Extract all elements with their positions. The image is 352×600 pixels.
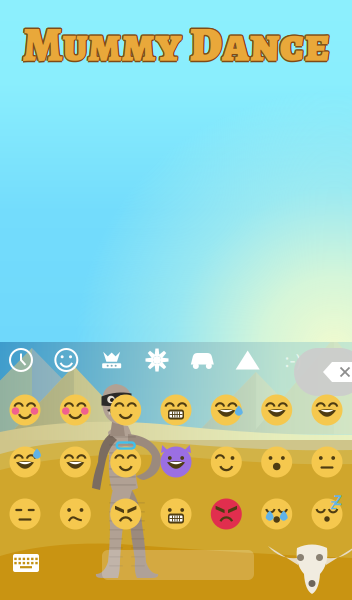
button[interactable]: Emoji	[110, 446, 141, 477]
button[interactable]: Emoji	[261, 498, 292, 529]
staticText: Mummy Dance	[22, 14, 329, 79]
staticText: :-)	[284, 348, 301, 372]
button[interactable]: Emoji	[261, 394, 292, 425]
button[interactable]: Emoji	[9, 394, 40, 425]
button[interactable]: Emoji	[60, 498, 91, 529]
staticText: Z	[330, 498, 336, 512]
button[interactable]: Symbols	[235, 347, 261, 373]
button[interactable]: Emoji	[9, 446, 40, 477]
button[interactable]: Switch keyboard	[12, 553, 40, 573]
button[interactable]: Text faces	[280, 347, 306, 373]
button[interactable]: Emoji	[160, 446, 191, 477]
staticText: Mummy Dance	[21, 11, 328, 76]
button[interactable]: Emoji	[311, 498, 342, 529]
button[interactable]: Emoji	[211, 446, 242, 477]
button[interactable]: Emoji	[211, 394, 242, 425]
button[interactable]: Emoji	[311, 394, 342, 425]
staticText: Mummy Dance	[22, 12, 329, 77]
button[interactable]: Emoji	[60, 394, 91, 425]
button[interactable]: Emoji	[261, 446, 292, 477]
button[interactable]: Emoji	[311, 446, 342, 477]
button[interactable]: Delete	[294, 348, 352, 396]
staticText: Mummy Dance	[23, 11, 330, 76]
button[interactable]: Emoji	[211, 498, 242, 529]
button[interactable]: Emoji	[9, 498, 40, 529]
button[interactable]: Travel	[189, 347, 215, 373]
staticText: Mummy Dance	[24, 12, 331, 77]
button[interactable]: Emoji	[110, 498, 141, 529]
staticText: Mummy Dance	[22, 11, 329, 76]
staticText: Z	[334, 491, 342, 509]
button[interactable]: Space	[102, 550, 254, 580]
button[interactable]: Emoji	[160, 394, 191, 425]
button[interactable]: Emoji	[60, 446, 91, 477]
button[interactable]: Nature	[144, 347, 170, 373]
staticText: Mummy Dance	[21, 12, 328, 77]
button[interactable]: Recently used	[8, 347, 34, 373]
button[interactable]: People	[99, 347, 125, 373]
button[interactable]: Smileys	[53, 347, 79, 373]
button[interactable]: Emoji	[110, 394, 141, 425]
button[interactable]: Emoji	[160, 498, 191, 529]
